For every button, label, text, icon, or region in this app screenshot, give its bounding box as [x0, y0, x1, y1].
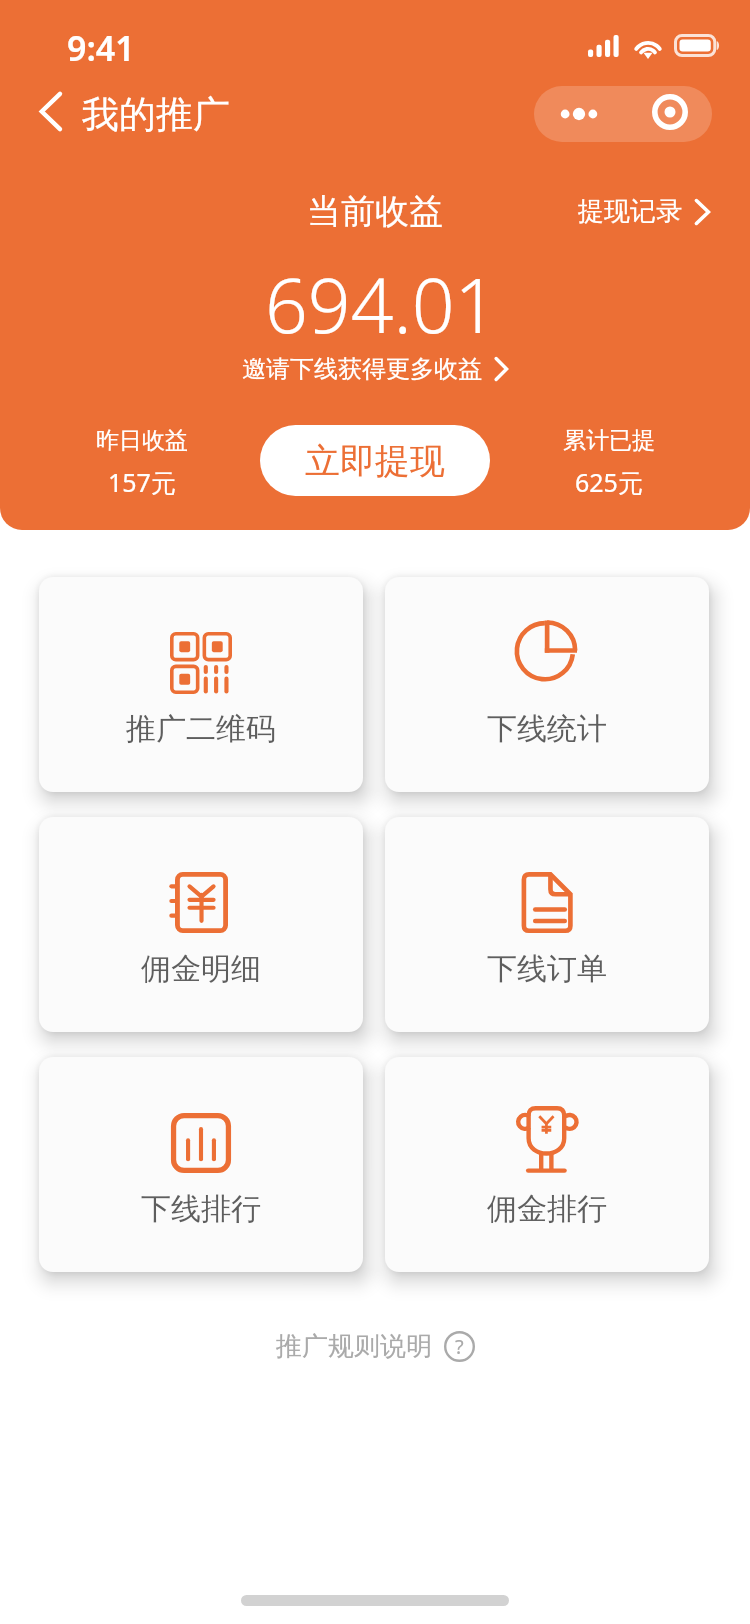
button[interactable]: 立即提现: [260, 425, 490, 496]
staticText: 推广规则说明: [276, 1330, 432, 1363]
staticText: 625元: [575, 465, 643, 499]
staticText: 累计已提: [563, 426, 655, 455]
button[interactable]: Close: [623, 86, 712, 142]
button[interactable]: More options: [534, 86, 623, 142]
staticText: 我的推广: [82, 91, 230, 138]
button[interactable]: 下线订单: [385, 817, 709, 1032]
button[interactable]: 邀请下线获得更多收益: [234, 350, 516, 388]
staticText: ?: [455, 1333, 464, 1360]
button[interactable]: 下线统计: [385, 577, 709, 792]
staticText: 下线订单: [487, 950, 607, 988]
button[interactable]: 推广二维码: [39, 577, 363, 792]
staticText: 推广二维码: [126, 710, 276, 748]
button[interactable]: 下线排行: [39, 1057, 363, 1272]
staticText: 提现记录: [578, 195, 682, 228]
staticText: 昨日收益: [96, 426, 188, 455]
staticText: 立即提现: [305, 439, 445, 483]
staticText: 当前收益: [307, 190, 443, 233]
staticText: 下线排行: [141, 1190, 261, 1228]
button[interactable]: 提现记录: [566, 189, 722, 234]
staticText: 157元: [108, 465, 176, 499]
staticText: 佣金明细: [141, 950, 261, 988]
button[interactable]: Back: [22, 81, 78, 141]
staticText: 下线统计: [487, 710, 607, 748]
button[interactable]: 佣金明细: [39, 817, 363, 1032]
button[interactable]: 推广规则说明: [266, 1320, 485, 1373]
staticText: 邀请下线获得更多收益: [242, 354, 482, 384]
staticText: 9:41: [67, 25, 135, 65]
staticText: 694.01: [265, 253, 498, 335]
staticText: 佣金排行: [487, 1190, 607, 1228]
button[interactable]: 佣金排行: [385, 1057, 709, 1272]
